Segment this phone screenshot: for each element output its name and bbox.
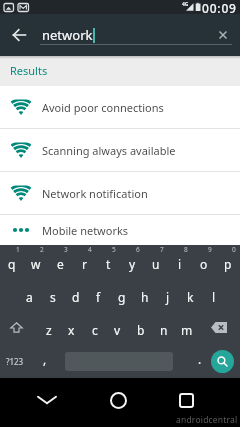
staticText: x	[68, 322, 75, 338]
staticText: v	[114, 322, 121, 338]
staticText: k	[187, 289, 194, 305]
staticText: Results	[10, 63, 48, 78]
button[interactable]: f	[87, 278, 110, 311]
staticText: o	[200, 256, 208, 272]
staticText: .	[198, 351, 202, 367]
staticText: c	[92, 322, 98, 338]
button[interactable]: h	[133, 278, 156, 311]
staticText: Network notification	[42, 186, 148, 201]
button[interactable]: m	[175, 311, 198, 344]
staticText: ,	[43, 351, 47, 367]
staticText: l	[212, 289, 216, 305]
staticText: w	[31, 256, 41, 272]
button[interactable]: u	[144, 245, 168, 278]
staticText: 4	[88, 245, 92, 254]
button[interactable]	[0, 311, 32, 344]
button[interactable]: y	[120, 245, 144, 278]
button[interactable]: .	[195, 344, 205, 378]
staticText: 4G	[182, 1, 189, 8]
button[interactable]: k	[179, 278, 202, 311]
staticText: d	[72, 289, 80, 305]
button[interactable]: j	[156, 278, 179, 311]
button[interactable]: r	[72, 245, 96, 278]
staticText: q	[8, 256, 16, 272]
staticText: f	[96, 289, 101, 305]
button[interactable]: v	[106, 311, 129, 344]
button[interactable]: i	[168, 245, 192, 278]
staticText: 2	[40, 245, 44, 254]
staticText: e	[57, 256, 64, 272]
staticText: Avoid poor connections	[42, 100, 164, 115]
staticText: i	[178, 256, 182, 272]
button[interactable]: b	[129, 311, 152, 344]
staticText: y	[129, 256, 136, 272]
button[interactable]	[31, 384, 63, 416]
button[interactable]: ?123	[0, 344, 30, 378]
staticText: b	[137, 322, 145, 338]
button[interactable]: ,	[30, 344, 60, 378]
button[interactable]: c	[83, 311, 106, 344]
button[interactable]	[170, 384, 202, 416]
button[interactable]: w	[24, 245, 48, 278]
staticText: u	[152, 256, 160, 272]
staticText: ?123	[6, 356, 24, 367]
staticText: 9	[208, 245, 212, 254]
button[interactable]: n	[152, 311, 175, 344]
button[interactable]: g	[110, 278, 133, 311]
button[interactable]: s	[41, 278, 64, 311]
button[interactable]: e	[48, 245, 72, 278]
staticText: 0	[232, 245, 236, 254]
staticText: g	[118, 289, 126, 305]
staticText: j	[166, 289, 170, 305]
button[interactable]	[206, 14, 240, 56]
button[interactable]	[198, 311, 240, 344]
staticText: r	[82, 256, 87, 272]
staticText: s	[50, 289, 56, 305]
button[interactable]: q	[0, 245, 24, 278]
button[interactable]	[0, 14, 38, 56]
button[interactable]	[102, 384, 134, 416]
staticText: androidcentral	[176, 414, 238, 426]
button[interactable]: x	[60, 311, 83, 344]
staticText: 7	[160, 245, 164, 254]
button[interactable]: Mobile networks	[0, 215, 240, 245]
staticText: 5	[112, 245, 116, 254]
staticText: z	[46, 322, 52, 338]
button[interactable]: o	[192, 245, 216, 278]
button[interactable]: Scanning always available	[0, 129, 240, 172]
staticText: 1	[16, 245, 20, 254]
button[interactable]: l	[202, 278, 225, 311]
staticText: 8	[184, 245, 188, 254]
staticText: Mobile networks	[42, 223, 129, 238]
staticText: 3	[64, 245, 68, 254]
staticText: h	[141, 289, 149, 305]
button[interactable]: t	[96, 245, 120, 278]
button[interactable]: Network notification	[0, 172, 240, 215]
button[interactable]: z	[37, 311, 60, 344]
staticText: 00:09	[202, 0, 237, 14]
button[interactable]: Avoid poor connections	[0, 86, 240, 129]
staticText: m	[181, 322, 193, 338]
staticText: t	[106, 256, 111, 272]
staticText: a	[26, 289, 33, 305]
staticText: Scanning always available	[42, 143, 176, 158]
staticText: n	[160, 322, 168, 338]
button[interactable]: p	[216, 245, 240, 278]
button[interactable]: a	[18, 278, 41, 311]
button[interactable]: d	[64, 278, 87, 311]
staticText: 6	[136, 245, 140, 254]
staticText: network	[42, 26, 93, 44]
button[interactable]	[211, 350, 234, 373]
staticText: p	[224, 256, 232, 272]
